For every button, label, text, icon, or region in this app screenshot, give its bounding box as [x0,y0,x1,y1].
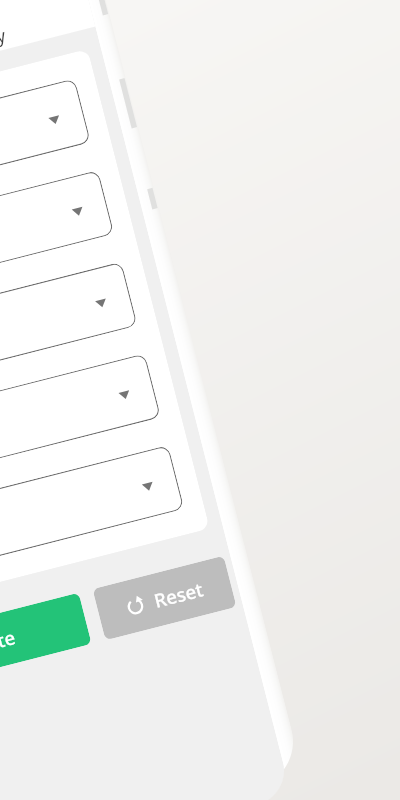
staticText: Reset [151,576,207,613]
staticText: Currency Converter Salary [0,23,9,100]
button[interactable] [0,262,138,407]
button[interactable] [0,445,184,590]
button[interactable] [0,78,91,224]
button[interactable]: Reset [92,556,237,640]
other: Reset [123,594,147,619]
staticText: Calculate [0,624,18,669]
button[interactable] [0,170,114,315]
button[interactable] [0,353,161,499]
button[interactable]: Calculate [0,593,92,700]
